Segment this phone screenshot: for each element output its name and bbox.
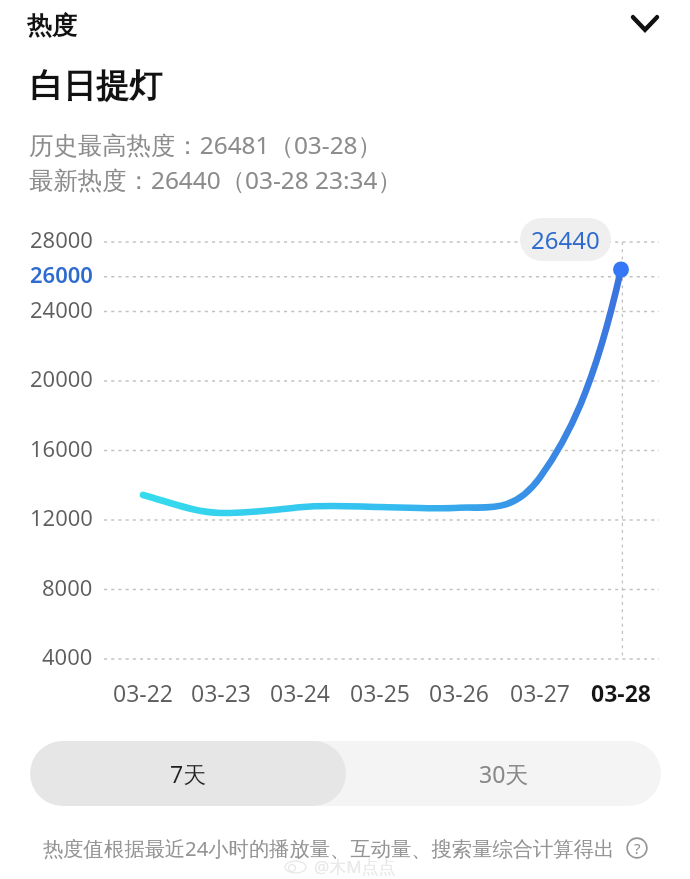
- staticText: 热度: [27, 10, 77, 41]
- staticText: 03-22: [113, 677, 174, 708]
- staticText: 最新热度：26440（03-28 23:34）: [29, 163, 402, 196]
- staticText: 白日提灯: [30, 65, 162, 107]
- staticText: 热度值根据最近24小时的播放量、互动量、搜索量综合计算得出: [43, 834, 615, 862]
- staticText: 03-27: [510, 677, 571, 708]
- staticText: 7天: [170, 758, 207, 789]
- staticText: 03-28: [591, 677, 651, 708]
- staticText: 12000: [30, 502, 93, 532]
- staticText: 03-26: [429, 677, 490, 708]
- staticText: 24000: [30, 294, 93, 324]
- staticText: 20000: [30, 363, 93, 393]
- staticText: @木M点点: [314, 855, 396, 878]
- button[interactable]: 30天: [346, 741, 661, 806]
- staticText: 03-25: [350, 677, 411, 708]
- button[interactable]: Help: [626, 837, 648, 859]
- staticText: 26000: [30, 259, 93, 289]
- staticText: 30天: [479, 758, 529, 789]
- button[interactable]: 7天: [30, 741, 346, 806]
- staticText: 28000: [30, 224, 93, 254]
- staticText: 8000: [42, 572, 93, 602]
- staticText: 16000: [30, 433, 93, 463]
- staticText: 03-24: [270, 677, 331, 708]
- staticText: 03-23: [191, 677, 252, 708]
- staticText: 历史最高热度：26481（03-28）: [29, 128, 382, 161]
- button[interactable]: Collapse: [621, 0, 669, 48]
- staticText: 26440: [531, 223, 600, 256]
- staticText: 4000: [42, 641, 93, 671]
- staticText: ?: [634, 838, 641, 858]
